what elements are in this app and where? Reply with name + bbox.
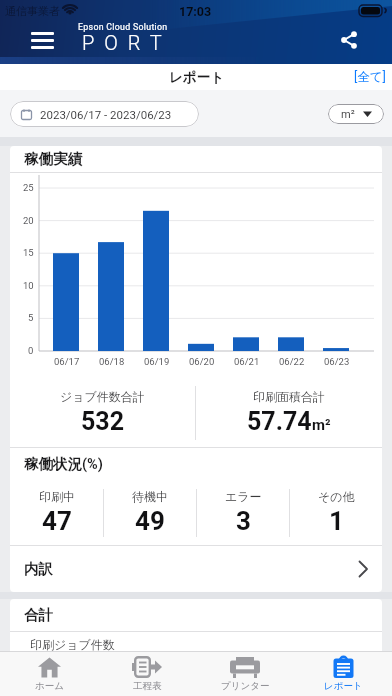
staticText: 20 [23, 215, 34, 226]
staticText: 稼働状況(%) [24, 455, 103, 473]
staticText: 06/17 [54, 356, 80, 367]
button[interactable]: [全て] [354, 69, 386, 85]
staticText: ホーム [35, 680, 64, 692]
staticText: エラー [225, 489, 262, 504]
staticText: PORT [82, 31, 172, 54]
staticText: 内訳 [24, 560, 53, 578]
staticText: 稼働実績 [24, 150, 82, 168]
staticText: 5 [28, 312, 34, 323]
staticText: 532 [81, 407, 125, 436]
staticText: 印刷面積合計 [253, 389, 325, 404]
staticText: レポート [324, 680, 363, 692]
staticText: 待機中 [132, 489, 168, 504]
staticText: 工程表 [133, 680, 162, 692]
staticText: 合計 [24, 606, 53, 624]
staticText: 49 [135, 506, 165, 536]
button[interactable]: 工程表 [98, 652, 196, 696]
button[interactable]: プリンター [196, 652, 294, 696]
button[interactable] [330, 26, 370, 66]
staticText: 15 [23, 247, 34, 258]
staticText: m² [312, 416, 331, 434]
button[interactable]: 内訳 [10, 546, 382, 592]
staticText: 47 [42, 506, 72, 536]
staticText: その他 [318, 489, 355, 504]
button[interactable]: レポート [294, 652, 392, 696]
staticText: 06/22 [279, 356, 305, 367]
staticText: 25 [23, 182, 34, 193]
staticText: ジョブ件数合計 [60, 389, 145, 404]
staticText: 印刷中 [39, 489, 75, 504]
staticText: 3 [236, 506, 251, 536]
button[interactable]: 2023/06/17 - 2023/06/23 [10, 101, 199, 127]
staticText: 通信事業者 [5, 4, 60, 18]
staticText: [全て] [354, 69, 386, 85]
staticText: 0 [28, 345, 34, 356]
staticText: 57.74 [247, 407, 312, 436]
staticText: 06/19 [144, 356, 170, 367]
staticText: 06/18 [99, 356, 125, 367]
button[interactable]: ホーム [0, 652, 98, 696]
staticText: プリンター [221, 680, 270, 692]
staticText: 06/21 [234, 356, 260, 367]
staticText: 17:03 [179, 4, 212, 19]
staticText: 06/20 [189, 356, 215, 367]
staticText: m² [341, 108, 355, 121]
staticText: 06/23 [324, 356, 350, 367]
staticText: 1 [329, 506, 344, 536]
button[interactable] [20, 26, 64, 70]
staticText: 10 [23, 280, 34, 291]
button[interactable]: m² [328, 104, 384, 124]
staticText: レポート [169, 69, 224, 86]
staticText: Epson Cloud Solution [78, 22, 168, 32]
staticText: 2023/06/17 - 2023/06/23 [40, 108, 172, 121]
staticText: 印刷ジョブ件数 [30, 637, 115, 651]
